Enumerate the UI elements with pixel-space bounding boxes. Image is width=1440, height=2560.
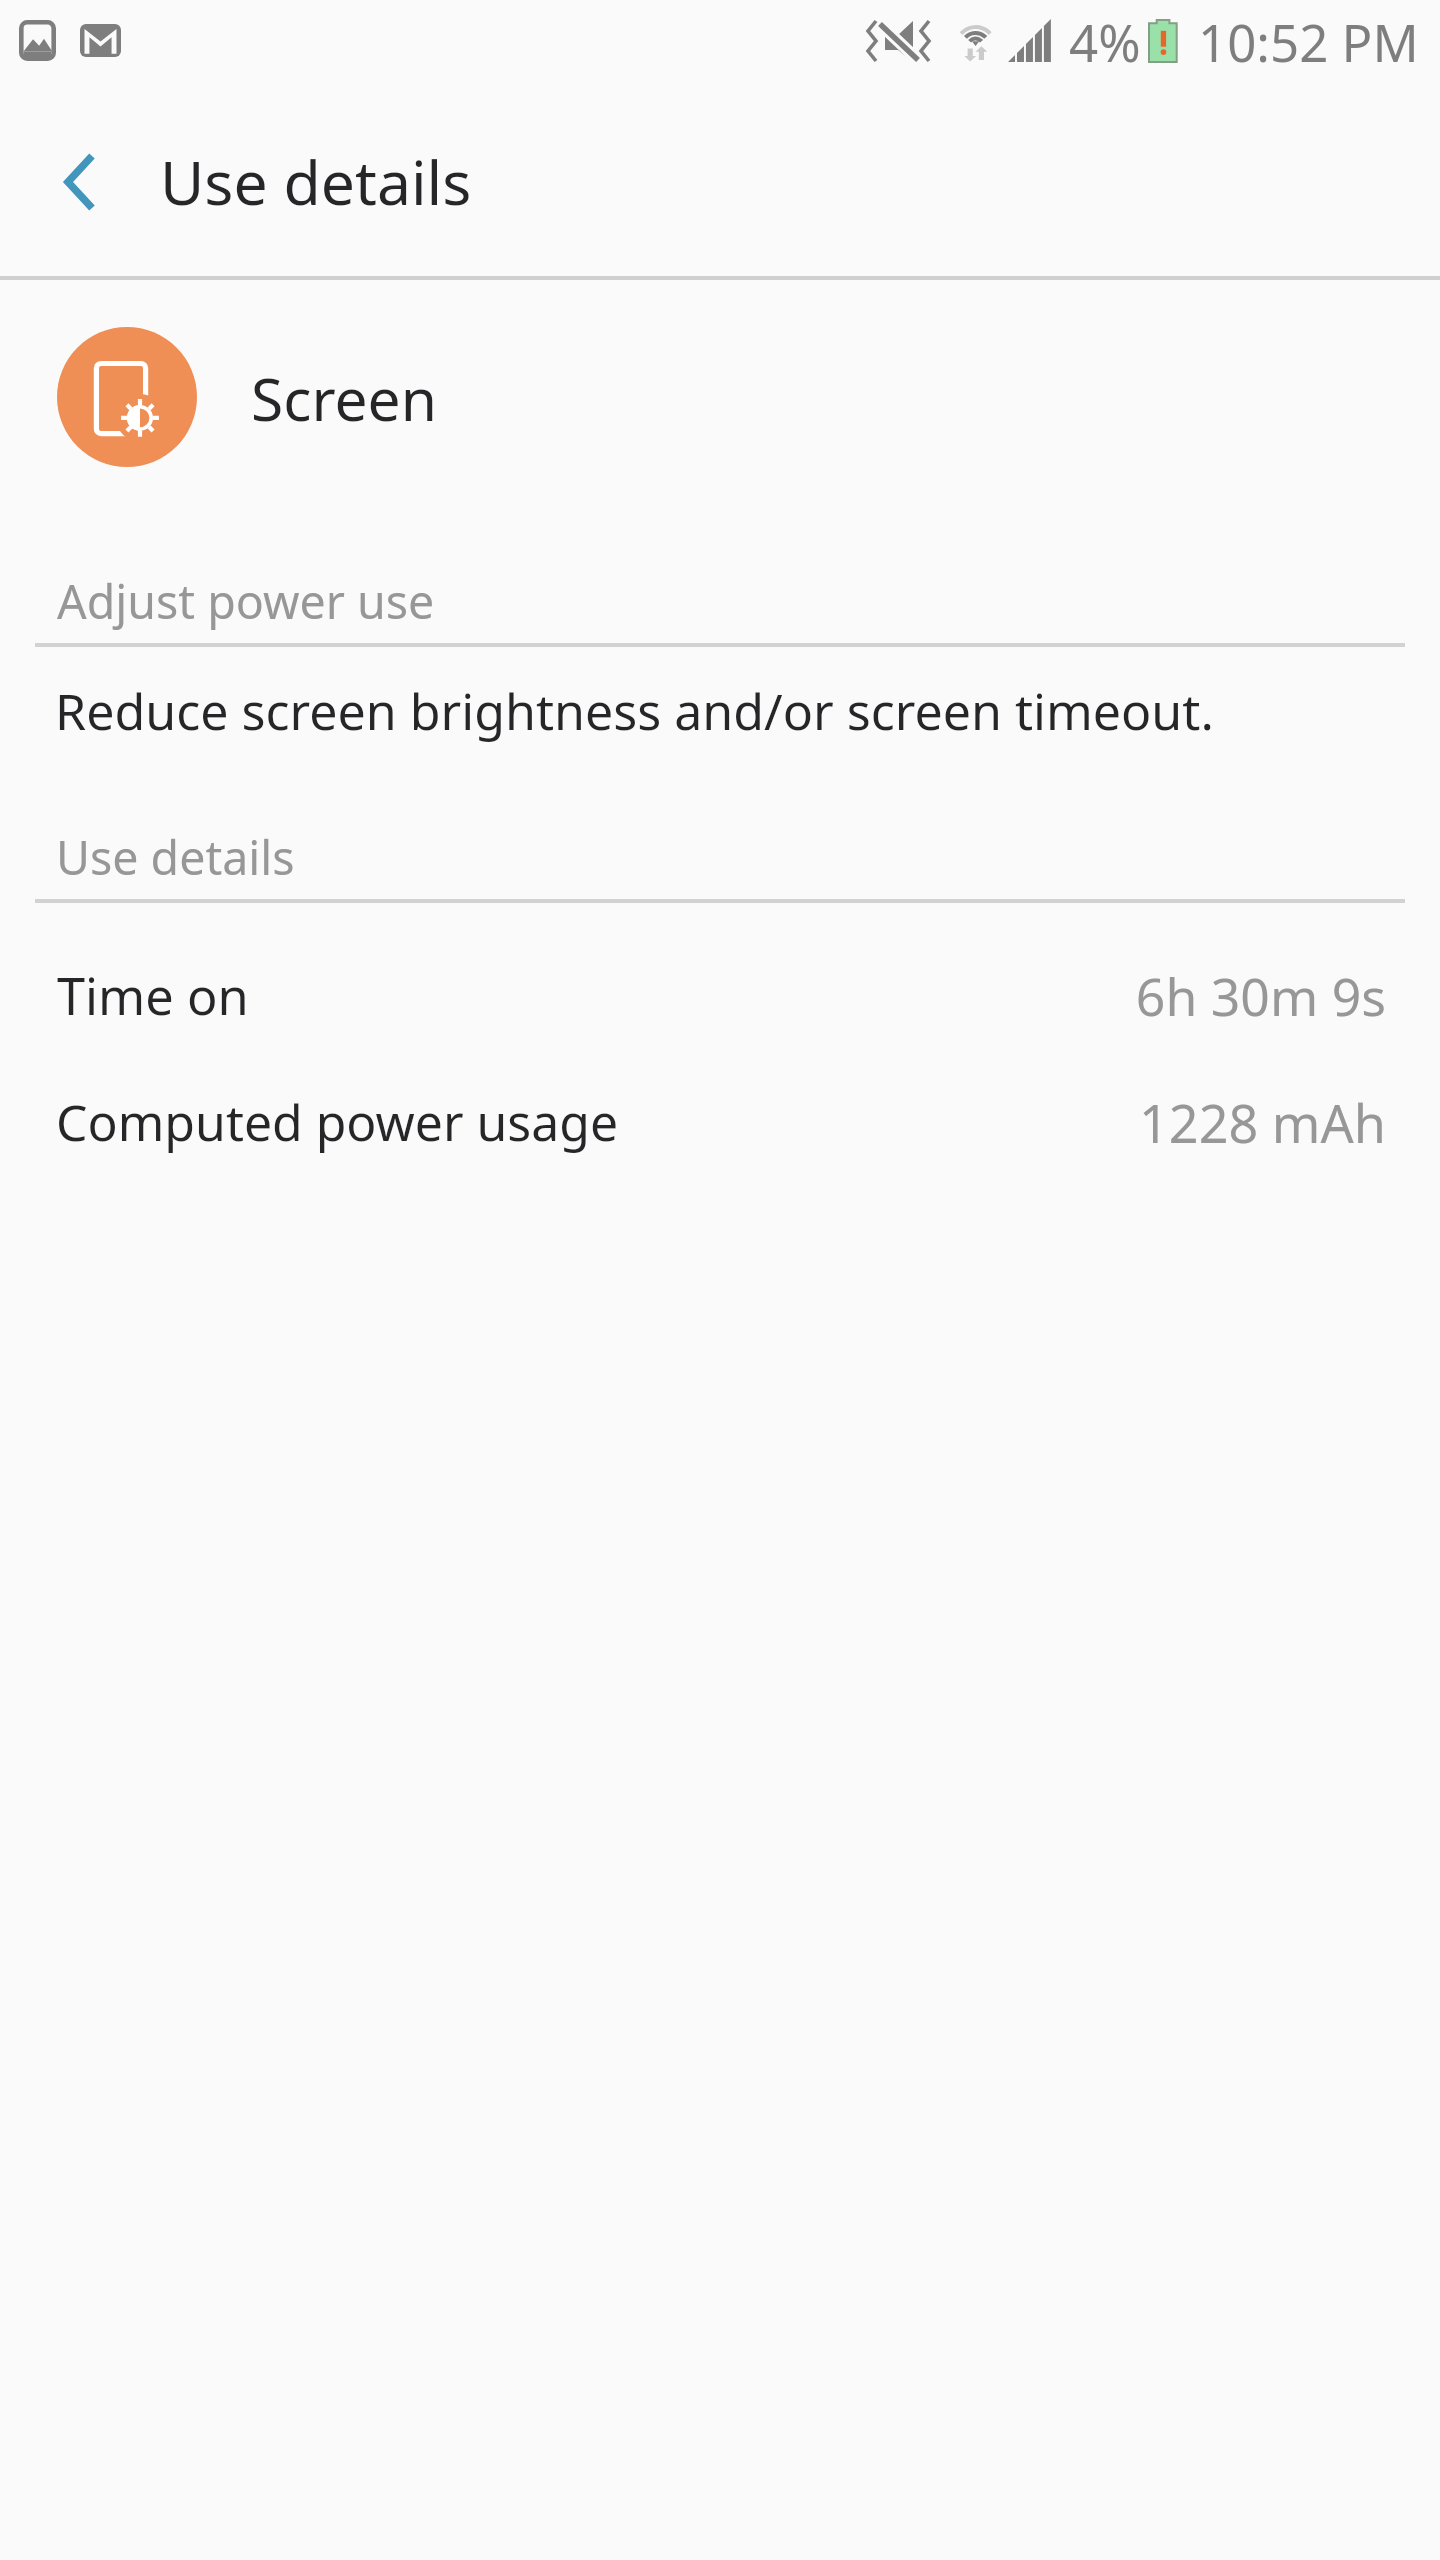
staticText: 4% <box>1069 7 1141 76</box>
button[interactable]: Navigate up <box>8 112 148 252</box>
staticText: Computed power usage <box>56 1088 619 1156</box>
button[interactable]: Time on <box>0 912 1440 1039</box>
staticText: 10:52 PM <box>1198 7 1419 76</box>
staticText: Use details <box>160 140 472 223</box>
staticText: Reduce screen brightness and/or screen t… <box>55 676 1214 744</box>
staticText: Use details <box>56 825 295 888</box>
staticText: 1228 mAh <box>0 1087 1386 1158</box>
staticText: 6h 30m 9s <box>0 961 1386 1031</box>
staticText: Time on <box>57 961 249 1030</box>
staticText: Adjust power use <box>57 569 435 632</box>
staticText: Screen <box>251 358 437 438</box>
button[interactable]: Screen <box>0 281 1440 513</box>
button[interactable]: Reduce screen brightness and/or screen t… <box>0 655 1440 783</box>
button[interactable]: Computed power usage <box>0 1039 1440 1166</box>
